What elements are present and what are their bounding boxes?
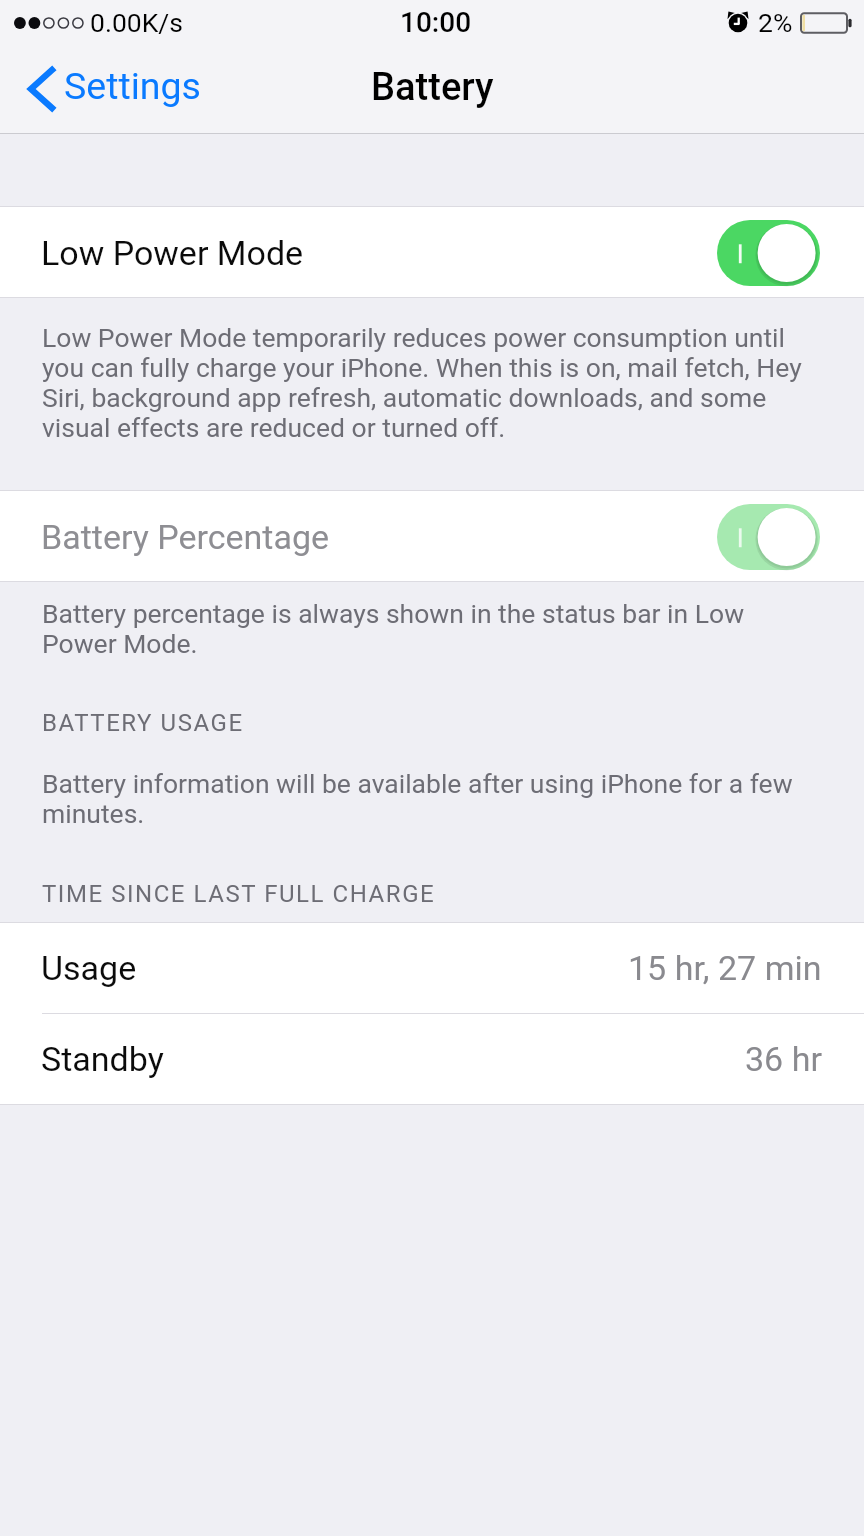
staticText: Battery [371,65,494,110]
button[interactable]: Usage [0,922,864,1013]
button[interactable]: Battery Percentage toggle, on [717,504,820,570]
staticText: 15 hr, 27 min [628,948,822,988]
staticText: Battery information will be available af… [42,768,842,830]
staticText: Usage [41,948,137,988]
staticText: Settings [64,64,201,108]
staticText: BATTERY USAGE [42,709,244,737]
staticText: 36 hr [745,1039,822,1079]
staticText: Standby [41,1039,164,1079]
button[interactable]: Back to Settings [24,44,201,134]
staticText: 10:00 [400,6,472,39]
button[interactable]: Low Power Mode toggle, on [717,220,820,286]
staticText: Low Power Mode temporarily reduces power… [42,322,824,444]
staticText: TIME SINCE LAST FULL CHARGE [42,880,436,908]
button[interactable]: Standby [0,1013,864,1105]
button[interactable]: Battery Percentage [0,491,864,582]
staticText: Battery Percentage [41,517,330,557]
staticText: 0.00K/s [90,7,183,38]
staticText: Battery percentage is always shown in th… [42,598,802,660]
button[interactable]: Low Power Mode [0,207,864,298]
staticText: 2% [758,7,793,38]
staticText: Low Power Mode [41,233,304,273]
